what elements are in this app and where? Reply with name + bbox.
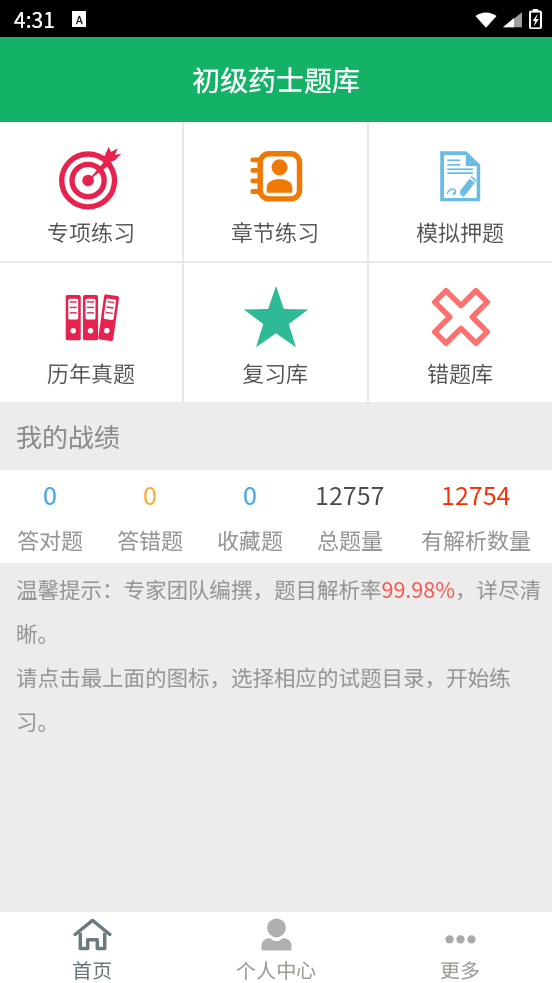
staticText: 我的战绩 — [16, 417, 121, 455]
staticText: 错题库 — [427, 356, 494, 388]
staticText: 有解析数量 — [421, 523, 532, 555]
staticText: 0 — [143, 476, 157, 512]
other: Profile — [258, 916, 295, 953]
staticText: 12757 — [315, 476, 385, 512]
staticText: 复习库 — [242, 356, 309, 388]
staticText: 0 — [243, 476, 257, 512]
staticText: 收藏题 — [217, 523, 284, 555]
button[interactable]: Home — [0, 912, 184, 983]
staticText: 初级药士题库 — [192, 59, 361, 100]
staticText: 温馨提示：专家团队编撰，题目解析率99.98%，详尽清晰。 请点击最上面的图标，… — [16, 573, 543, 736]
staticText: 章节练习 — [231, 215, 320, 247]
staticText: 个人中心 — [236, 955, 316, 983]
button[interactable]: 章节练习 — [184, 122, 367, 261]
button[interactable]: Profile — [184, 912, 368, 983]
staticText: 历年真题 — [47, 356, 136, 388]
staticText: 首页 — [72, 955, 112, 983]
button[interactable]: 历年真题 — [0, 263, 182, 402]
button[interactable]: 专项练习 — [0, 122, 182, 261]
staticText: 更多 — [440, 955, 480, 983]
staticText: 4:31 — [14, 4, 55, 34]
staticText: A — [76, 11, 83, 27]
button[interactable]: 错题库 — [369, 263, 552, 402]
button[interactable]: 复习库 — [184, 263, 367, 402]
staticText: 12754 — [441, 476, 511, 512]
staticText: 0 — [43, 476, 57, 512]
button[interactable]: 模拟押题 — [369, 122, 552, 261]
other: Home — [74, 916, 111, 953]
staticText: 模拟押题 — [416, 215, 505, 247]
staticText: 答错题 — [117, 523, 184, 555]
staticText: 总题量 — [317, 523, 384, 555]
staticText: 专项练习 — [47, 215, 136, 247]
other: More — [442, 916, 479, 953]
button[interactable]: More — [368, 912, 552, 983]
staticText: 答对题 — [17, 523, 84, 555]
